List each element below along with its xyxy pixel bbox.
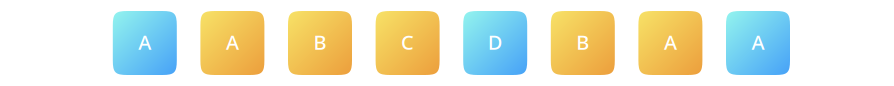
staticText: D (488, 29, 503, 55)
button[interactable]: B (288, 11, 352, 75)
button[interactable]: A (200, 11, 264, 75)
button[interactable]: D (463, 11, 527, 75)
button[interactable]: C (376, 11, 440, 75)
staticText: C (401, 29, 414, 55)
staticText: B (576, 29, 589, 55)
button[interactable]: B (551, 11, 615, 75)
staticText: A (751, 29, 764, 55)
staticText: A (226, 29, 239, 55)
button[interactable]: A (638, 11, 702, 75)
staticText: B (313, 29, 326, 55)
button[interactable]: A (726, 11, 790, 75)
staticText: A (664, 29, 677, 55)
button[interactable]: A (113, 11, 177, 75)
staticText: A (138, 29, 151, 55)
